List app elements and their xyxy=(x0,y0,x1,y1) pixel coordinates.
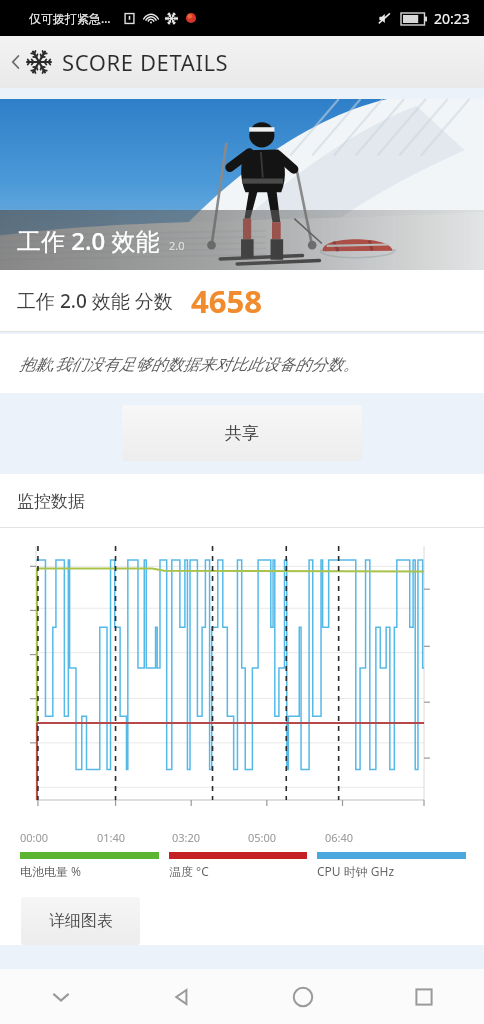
staticText: 共享 xyxy=(225,423,259,444)
staticText: 详细图表 xyxy=(49,911,113,931)
button[interactable]: Home xyxy=(242,969,363,1024)
staticText: 4658 xyxy=(191,280,262,322)
staticText: 00:00 xyxy=(20,830,49,845)
staticText: 监控数据 xyxy=(17,491,85,512)
button[interactable]: Hide keyboard xyxy=(0,969,121,1024)
staticText: 20:23 xyxy=(434,9,470,28)
button[interactable]: 详细图表 xyxy=(21,897,140,945)
staticText: 温度 °C xyxy=(169,863,209,879)
staticText: 2.0 xyxy=(169,238,185,253)
staticText: 工作 2.0 效能 分数 xyxy=(17,288,173,314)
other: Back xyxy=(6,52,26,72)
staticText: 工作 2.0 效能 xyxy=(17,224,160,257)
staticText: 仅可拨打紧急… xyxy=(29,10,111,26)
staticText: 电池电量 % xyxy=(20,863,82,879)
staticText: CPU 时钟 GHz xyxy=(317,863,395,879)
button[interactable]: 共享 xyxy=(122,405,362,461)
button[interactable]: Back xyxy=(0,36,484,88)
button[interactable]: Back xyxy=(121,969,242,1024)
staticText: 抱歉,我们没有足够的数据来对比此设备的分数。 xyxy=(19,353,360,375)
staticText: 05:00 xyxy=(248,830,277,845)
button[interactable]: Recents xyxy=(363,969,484,1024)
staticText: 01:40 xyxy=(97,830,126,845)
staticText: SCORE DETAILS xyxy=(62,47,229,77)
staticText: 06:40 xyxy=(325,830,354,845)
staticText: 03:20 xyxy=(172,830,201,845)
